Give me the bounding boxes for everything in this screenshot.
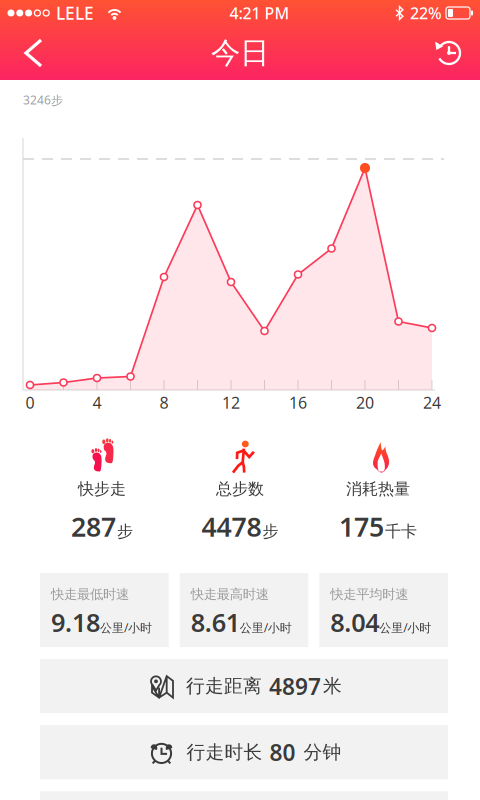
- button[interactable]: 行走时长: [0, 725, 480, 779]
- staticText: 8.04: [330, 605, 379, 639]
- staticText: 22%: [410, 2, 442, 24]
- staticText: 3246步: [23, 92, 63, 108]
- staticText: 公里/小时: [379, 620, 431, 635]
- staticText: 175: [339, 509, 384, 544]
- staticText: 行走时长: [186, 741, 262, 764]
- staticText: 米: [323, 675, 342, 698]
- staticText: 千卡: [385, 522, 417, 541]
- staticText: 9.18: [51, 605, 100, 639]
- staticText: 快走最低时速: [51, 586, 129, 602]
- staticText: 快步走: [78, 479, 126, 499]
- staticText: 24: [423, 392, 441, 413]
- button[interactable]: History: [418, 26, 480, 80]
- staticText: 今日: [211, 35, 269, 71]
- staticText: 消耗热量: [346, 479, 410, 499]
- staticText: 行走距离: [186, 675, 262, 698]
- staticText: 4478: [201, 509, 261, 544]
- staticText: 8.61: [191, 605, 240, 639]
- staticText: 快走平均时速: [330, 586, 408, 602]
- staticText: 80: [269, 737, 295, 767]
- staticText: 步: [262, 522, 278, 541]
- staticText: 12: [222, 392, 240, 413]
- button[interactable]: 行走距离: [0, 659, 480, 713]
- button[interactable]: Back: [0, 26, 62, 80]
- staticText: 8: [159, 392, 168, 413]
- staticText: 4:21 PM: [229, 2, 289, 24]
- staticText: LELE: [56, 1, 94, 24]
- staticText: 总步数: [216, 479, 264, 499]
- staticText: 287: [71, 509, 116, 544]
- staticText: 16: [289, 392, 307, 413]
- staticText: 0: [25, 392, 34, 413]
- staticText: 快走最高时速: [191, 586, 269, 602]
- staticText: 20: [356, 392, 374, 413]
- staticText: 步: [117, 522, 133, 541]
- staticText: 公里/小时: [100, 620, 152, 635]
- staticText: 4: [92, 392, 101, 413]
- staticText: 4897: [269, 671, 321, 701]
- staticText: 公里/小时: [240, 620, 292, 635]
- staticText: 分钟: [297, 741, 341, 764]
